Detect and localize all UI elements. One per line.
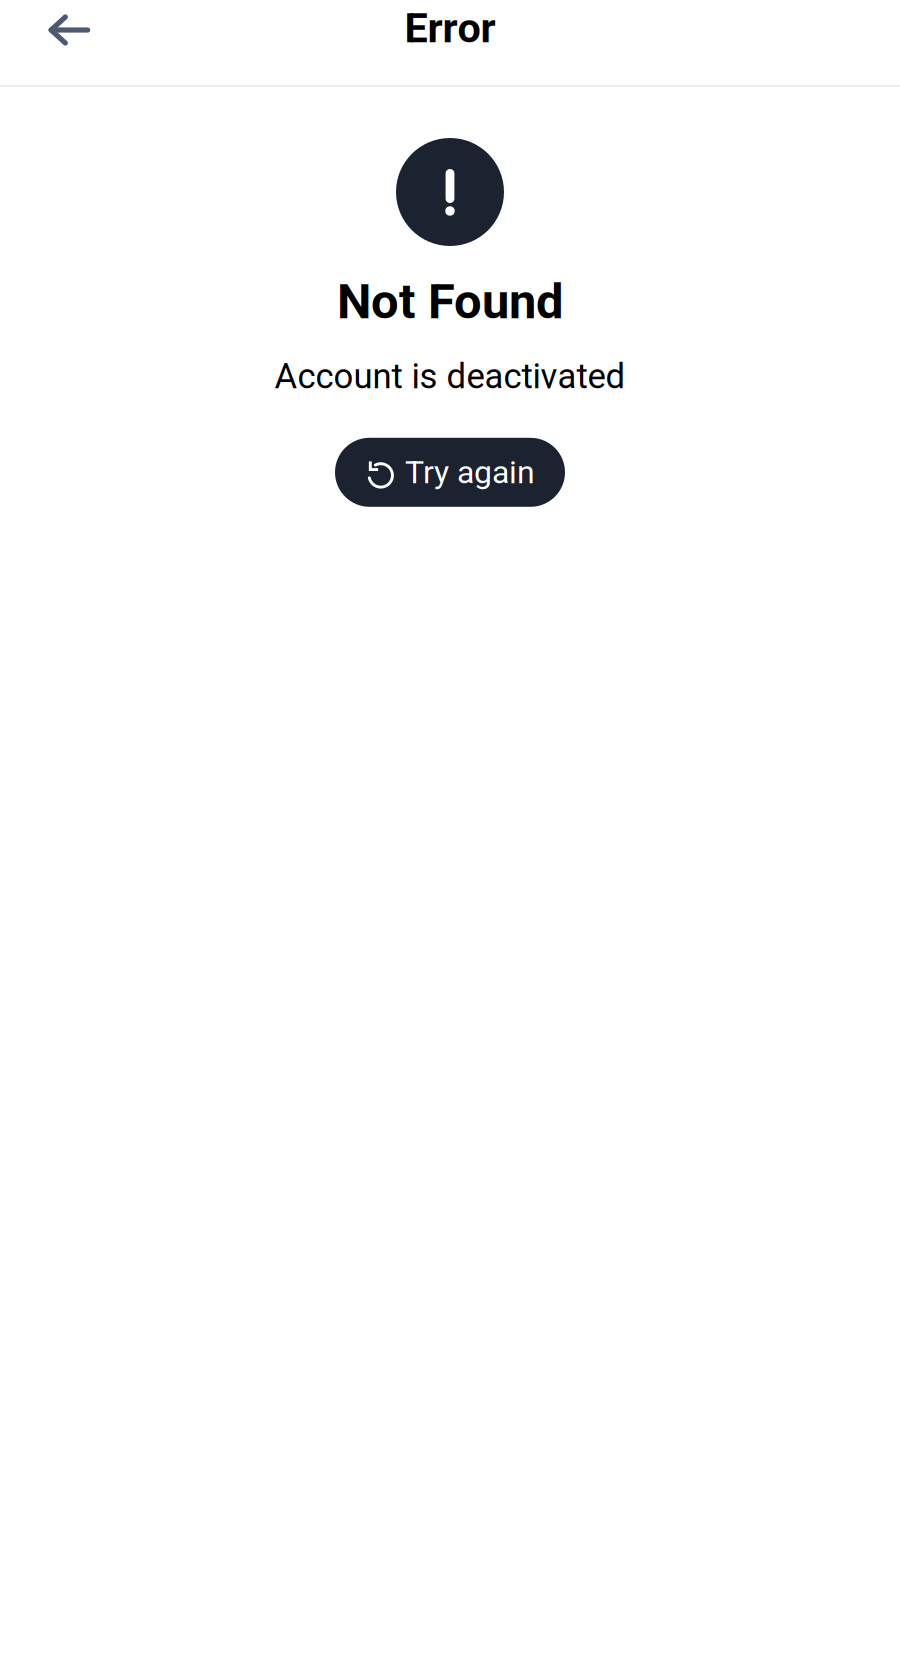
staticText: Account is deactivated [274,356,625,397]
button[interactable]: Try again [335,438,565,507]
button[interactable]: Back [0,0,110,56]
staticText: Error [404,4,495,52]
staticText: Try again [405,454,535,491]
staticText: Not Found [337,273,563,330]
